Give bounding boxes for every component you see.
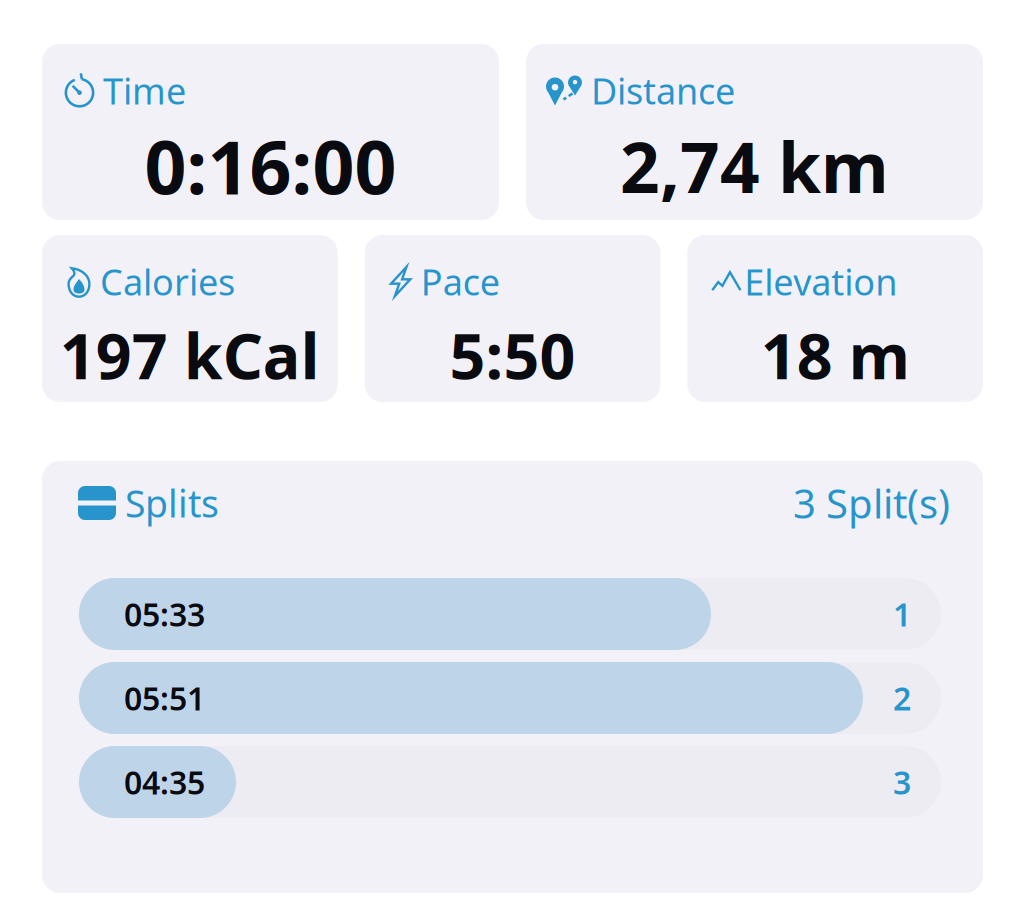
staticText: Distance [591,67,735,114]
staticText: 0:16:00 [144,117,396,215]
staticText: 05:51 [124,677,205,719]
staticText: Time [103,67,186,114]
staticText: 2,74 km [620,120,889,212]
staticText: 18 m [761,313,910,397]
button[interactable]: Calories [42,235,338,402]
staticText: 04:35 [124,761,205,803]
button[interactable]: Elevation [687,235,983,402]
staticText: Splits [125,478,219,528]
button[interactable]: Pace [365,235,660,402]
button[interactable]: Time [42,44,499,220]
button[interactable]: Distance [526,44,983,220]
staticText: 05:33 [124,593,205,635]
staticText: 5:50 [449,313,575,397]
staticText: 2 [893,677,911,719]
staticText: 1 [893,593,911,635]
staticText: 197 kCal [60,313,320,397]
staticText: 3 Split(s) [793,476,950,529]
staticText: Pace [421,258,500,305]
staticText: 3 [893,761,911,803]
staticText: Elevation [744,258,897,305]
staticText: Calories [100,258,235,305]
